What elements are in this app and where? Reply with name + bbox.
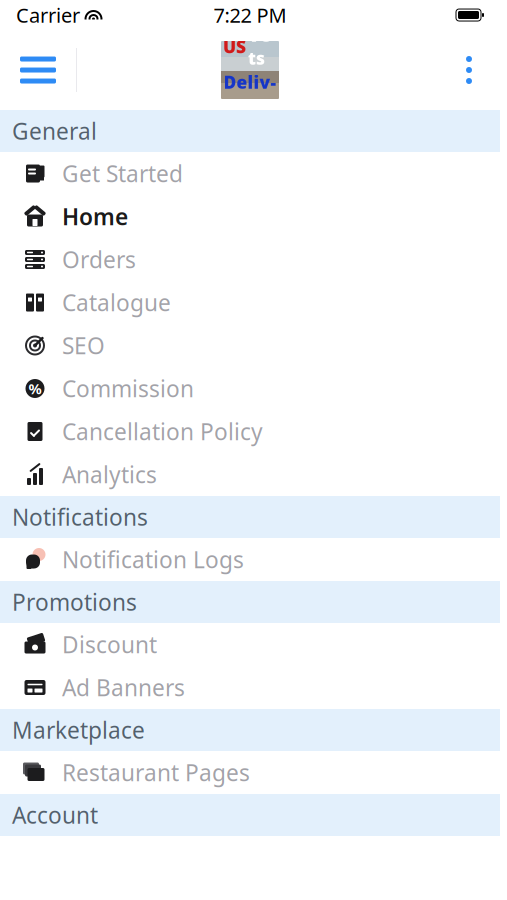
button[interactable]: Home [0,195,500,238]
staticText: Promotions [12,587,137,617]
staticText: Notification Logs [62,544,244,574]
button[interactable]: More options [438,30,500,110]
button[interactable]: % [0,367,500,410]
staticText: Analytics [62,459,157,489]
button[interactable]: Cancellation Policy [0,410,500,453]
button[interactable]: SEO [0,324,500,367]
staticText: Orders [62,244,136,274]
button[interactable]: Orders [0,238,500,281]
staticText: 7:22 PM [213,2,286,28]
button[interactable]: Analytics [0,453,500,496]
button[interactable]: Menu [0,30,76,110]
button[interactable]: USVets Deliver home [221,41,279,99]
staticText: Carrier [16,2,80,28]
staticText: Cancellation Policy [62,416,263,446]
staticText: Catalogue [62,287,171,317]
staticText: Commission [62,373,194,403]
staticText: General [12,116,97,146]
staticText: Ad Banners [62,672,185,702]
staticText: % [28,379,41,398]
button[interactable]: Catalogue [0,281,500,324]
staticText: SEO [62,330,105,360]
button[interactable]: Notification Logs [0,538,500,581]
staticText: Home [62,201,128,231]
staticText: Discount [62,629,157,659]
staticText: Get Started [62,158,183,188]
staticText: Marketplace [12,715,145,745]
staticText: Notifications [12,502,148,532]
button[interactable]: Ad Banners [0,666,500,709]
button[interactable]: Discount [0,623,500,666]
staticText: Restaurant Pages [62,757,250,787]
staticText: Vets [248,23,277,69]
staticText: US [223,35,246,58]
button[interactable]: Restaurant Pages [0,751,500,794]
staticText: Deliver [223,70,276,116]
staticText: Account [12,800,98,830]
button[interactable]: Get Started [0,152,500,195]
